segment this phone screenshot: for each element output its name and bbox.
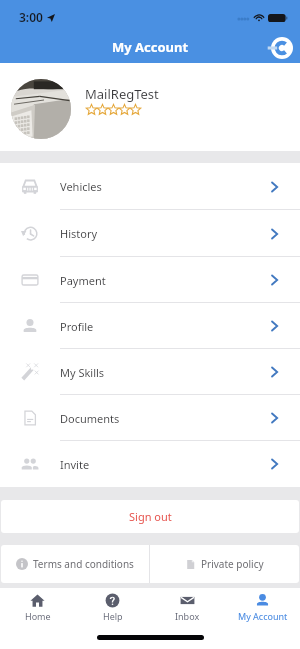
button[interactable]: MailRegTest bbox=[0, 63, 300, 151]
staticText: My Account bbox=[112, 38, 189, 56]
staticText: My Skills bbox=[60, 365, 105, 380]
staticText: Inbox bbox=[175, 610, 200, 622]
button[interactable]: Private policy bbox=[150, 545, 299, 583]
staticText: My Account bbox=[238, 610, 288, 622]
staticText: 3:00 bbox=[19, 9, 43, 25]
button[interactable]: Inbox bbox=[150, 588, 225, 626]
staticText: Vehicles bbox=[60, 179, 102, 194]
button[interactable]: My Skills bbox=[0, 349, 300, 395]
staticText: Private policy bbox=[201, 557, 264, 571]
button[interactable]: My Account bbox=[225, 588, 300, 626]
button[interactable]: Invite bbox=[0, 441, 300, 487]
staticText: Payment bbox=[60, 273, 106, 288]
button[interactable]: Help bbox=[75, 588, 150, 626]
button[interactable]: Payment bbox=[0, 257, 300, 303]
button[interactable]: Sign out bbox=[1, 500, 299, 533]
staticText: Invite bbox=[60, 457, 90, 472]
button[interactable]: Vehicles bbox=[0, 163, 300, 210]
staticText: Help bbox=[103, 610, 123, 622]
staticText: MailRegTest bbox=[85, 85, 159, 103]
button[interactable]: Getaround bbox=[271, 37, 293, 59]
button[interactable]: Terms and conditions bbox=[1, 545, 149, 583]
staticText: Sign out bbox=[129, 509, 172, 524]
staticText: Documents bbox=[60, 411, 120, 426]
staticText: Home bbox=[25, 610, 51, 622]
staticText: History bbox=[60, 226, 98, 241]
button[interactable]: History bbox=[0, 210, 300, 257]
button[interactable]: Documents bbox=[0, 395, 300, 441]
staticText: Terms and conditions bbox=[33, 557, 134, 571]
button[interactable]: Profile bbox=[0, 303, 300, 349]
staticText: Profile bbox=[60, 319, 94, 334]
button[interactable]: Home bbox=[0, 588, 75, 626]
